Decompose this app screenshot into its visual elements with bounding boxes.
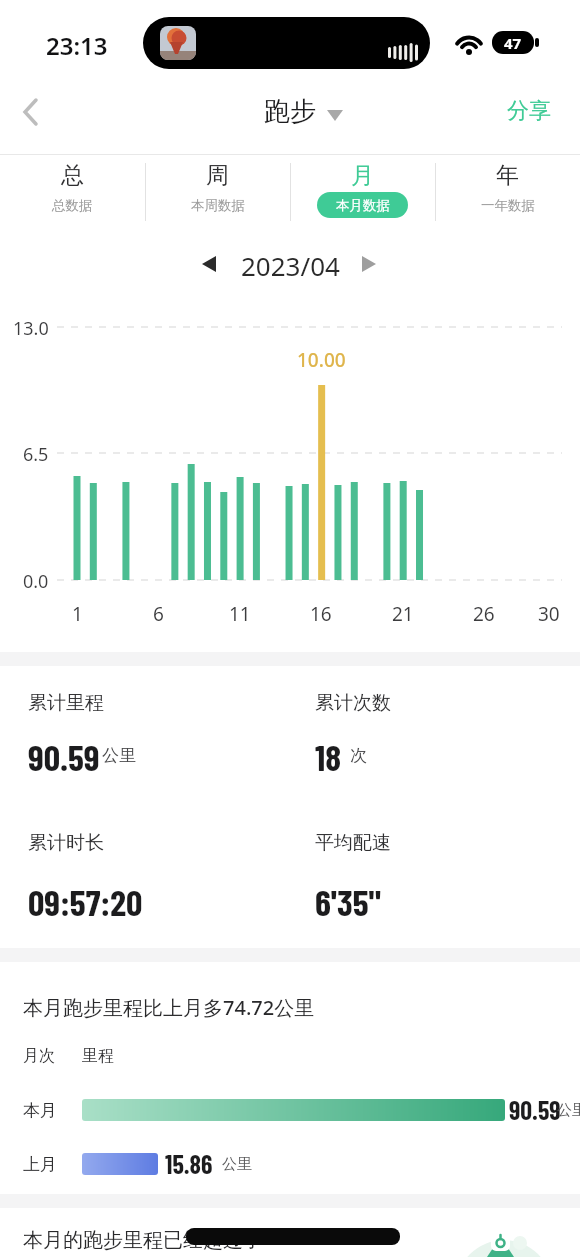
staticText: 次 (350, 745, 367, 766)
staticText: 公里 (557, 1101, 580, 1120)
staticText: 本月跑步里程比上月多74.72公里 (23, 994, 315, 1021)
staticText: 23:13 (46, 29, 108, 62)
staticText: 公里 (222, 1155, 252, 1174)
staticText: 10.00 (297, 347, 346, 373)
button[interactable]: 周 (145, 156, 290, 230)
staticText: 累计时长 (28, 831, 104, 855)
button[interactable]: 月 (290, 156, 435, 230)
button[interactable]: 年 (435, 156, 580, 230)
staticText: 本月数据 (336, 197, 390, 214)
staticText: 21 (392, 601, 414, 627)
staticText: 6 (153, 601, 164, 627)
staticText: 30 (538, 601, 560, 627)
staticText: 26 (473, 601, 495, 627)
staticText: 1 (72, 601, 83, 627)
staticText: 13.0 (13, 316, 49, 341)
staticText: 11 (229, 601, 251, 627)
staticText: 0.0 (23, 569, 49, 594)
staticText: 总数据 (52, 197, 93, 214)
staticText: 周 (206, 161, 229, 190)
staticText: 一年数据 (481, 197, 535, 214)
staticText: 上月 (23, 1154, 57, 1175)
staticText: 月 (351, 161, 374, 190)
staticText: 本周数据 (191, 197, 245, 214)
staticText: 09:57:20 (28, 880, 143, 923)
button[interactable]: 总 (0, 156, 145, 230)
staticText: 6.5 (23, 442, 49, 467)
staticText: 分享 (507, 97, 551, 125)
button[interactable] (10, 88, 54, 136)
staticText: 90.59 (28, 735, 100, 778)
staticText: 47 (504, 33, 522, 53)
staticText: 15.86 (165, 1148, 213, 1179)
button[interactable] (350, 245, 390, 283)
button[interactable] (190, 245, 230, 283)
staticText: 累计里程 (28, 691, 104, 715)
button[interactable]: 分享 (500, 92, 564, 132)
staticText: 2023/04 (241, 248, 340, 283)
staticText: 公里 (102, 745, 136, 766)
staticText: 年 (496, 161, 519, 190)
staticText: 6'35" (315, 880, 381, 923)
staticText: 本月的跑步里程已经超过了 (23, 1228, 263, 1253)
staticText: 16 (310, 601, 332, 627)
staticText: 里程 (82, 1046, 114, 1066)
staticText: 18 (315, 735, 342, 778)
staticText: 总 (61, 161, 84, 190)
staticText: 平均配速 (315, 831, 391, 855)
staticText: 本月 (23, 1100, 57, 1121)
staticText: 跑步 (264, 95, 316, 128)
staticText: 90.59 (509, 1094, 561, 1125)
staticText: 累计次数 (315, 691, 391, 715)
staticText: 月次 (23, 1046, 55, 1066)
